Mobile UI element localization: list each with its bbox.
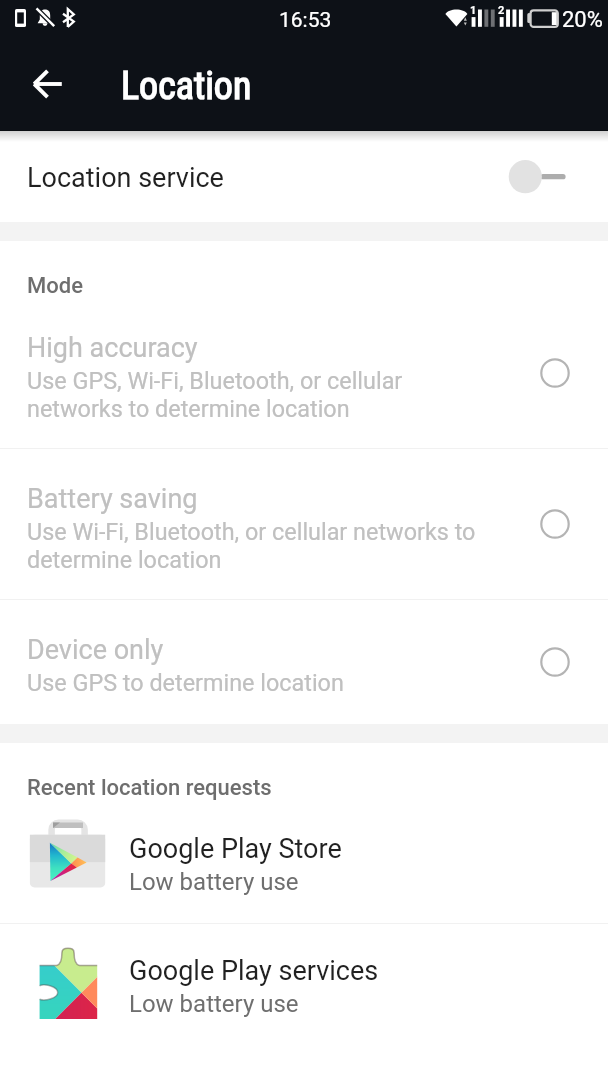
staticText: Use Wi-Fi, Bluetooth, or cellular networ…: [27, 518, 476, 574]
button[interactable]: Google Play services: [0, 924, 608, 1046]
staticText: Use GPS to determine location: [27, 669, 344, 696]
button[interactable]: Device only: [0, 600, 608, 724]
staticText: Battery saving: [27, 483, 198, 515]
button[interactable]: High accuracy: [0, 298, 608, 448]
staticText: Location service: [27, 162, 224, 194]
button[interactable]: Location service: [0, 131, 608, 222]
staticText: Recent location requests: [27, 775, 272, 801]
button[interactable]: Google Play Store: [0, 802, 608, 923]
staticText: Low battery use: [129, 868, 299, 896]
staticText: Google Play services: [129, 955, 379, 987]
staticText: Use GPS, Wi-Fi, Bluetooth, or cellular n…: [27, 367, 403, 423]
staticText: Location: [121, 64, 252, 109]
staticText: Google Play Store: [129, 833, 342, 865]
staticText: 1: [470, 4, 477, 17]
button[interactable]: Back: [20, 56, 75, 111]
staticText: Mode: [27, 273, 84, 299]
staticText: 2: [498, 4, 505, 17]
staticText: High accuracy: [27, 332, 198, 364]
staticText: Low battery use: [129, 990, 299, 1018]
staticText: 16:53: [279, 8, 332, 33]
button[interactable]: Battery saving: [0, 449, 608, 599]
staticText: 20%: [562, 7, 603, 33]
staticText: Device only: [27, 634, 164, 666]
